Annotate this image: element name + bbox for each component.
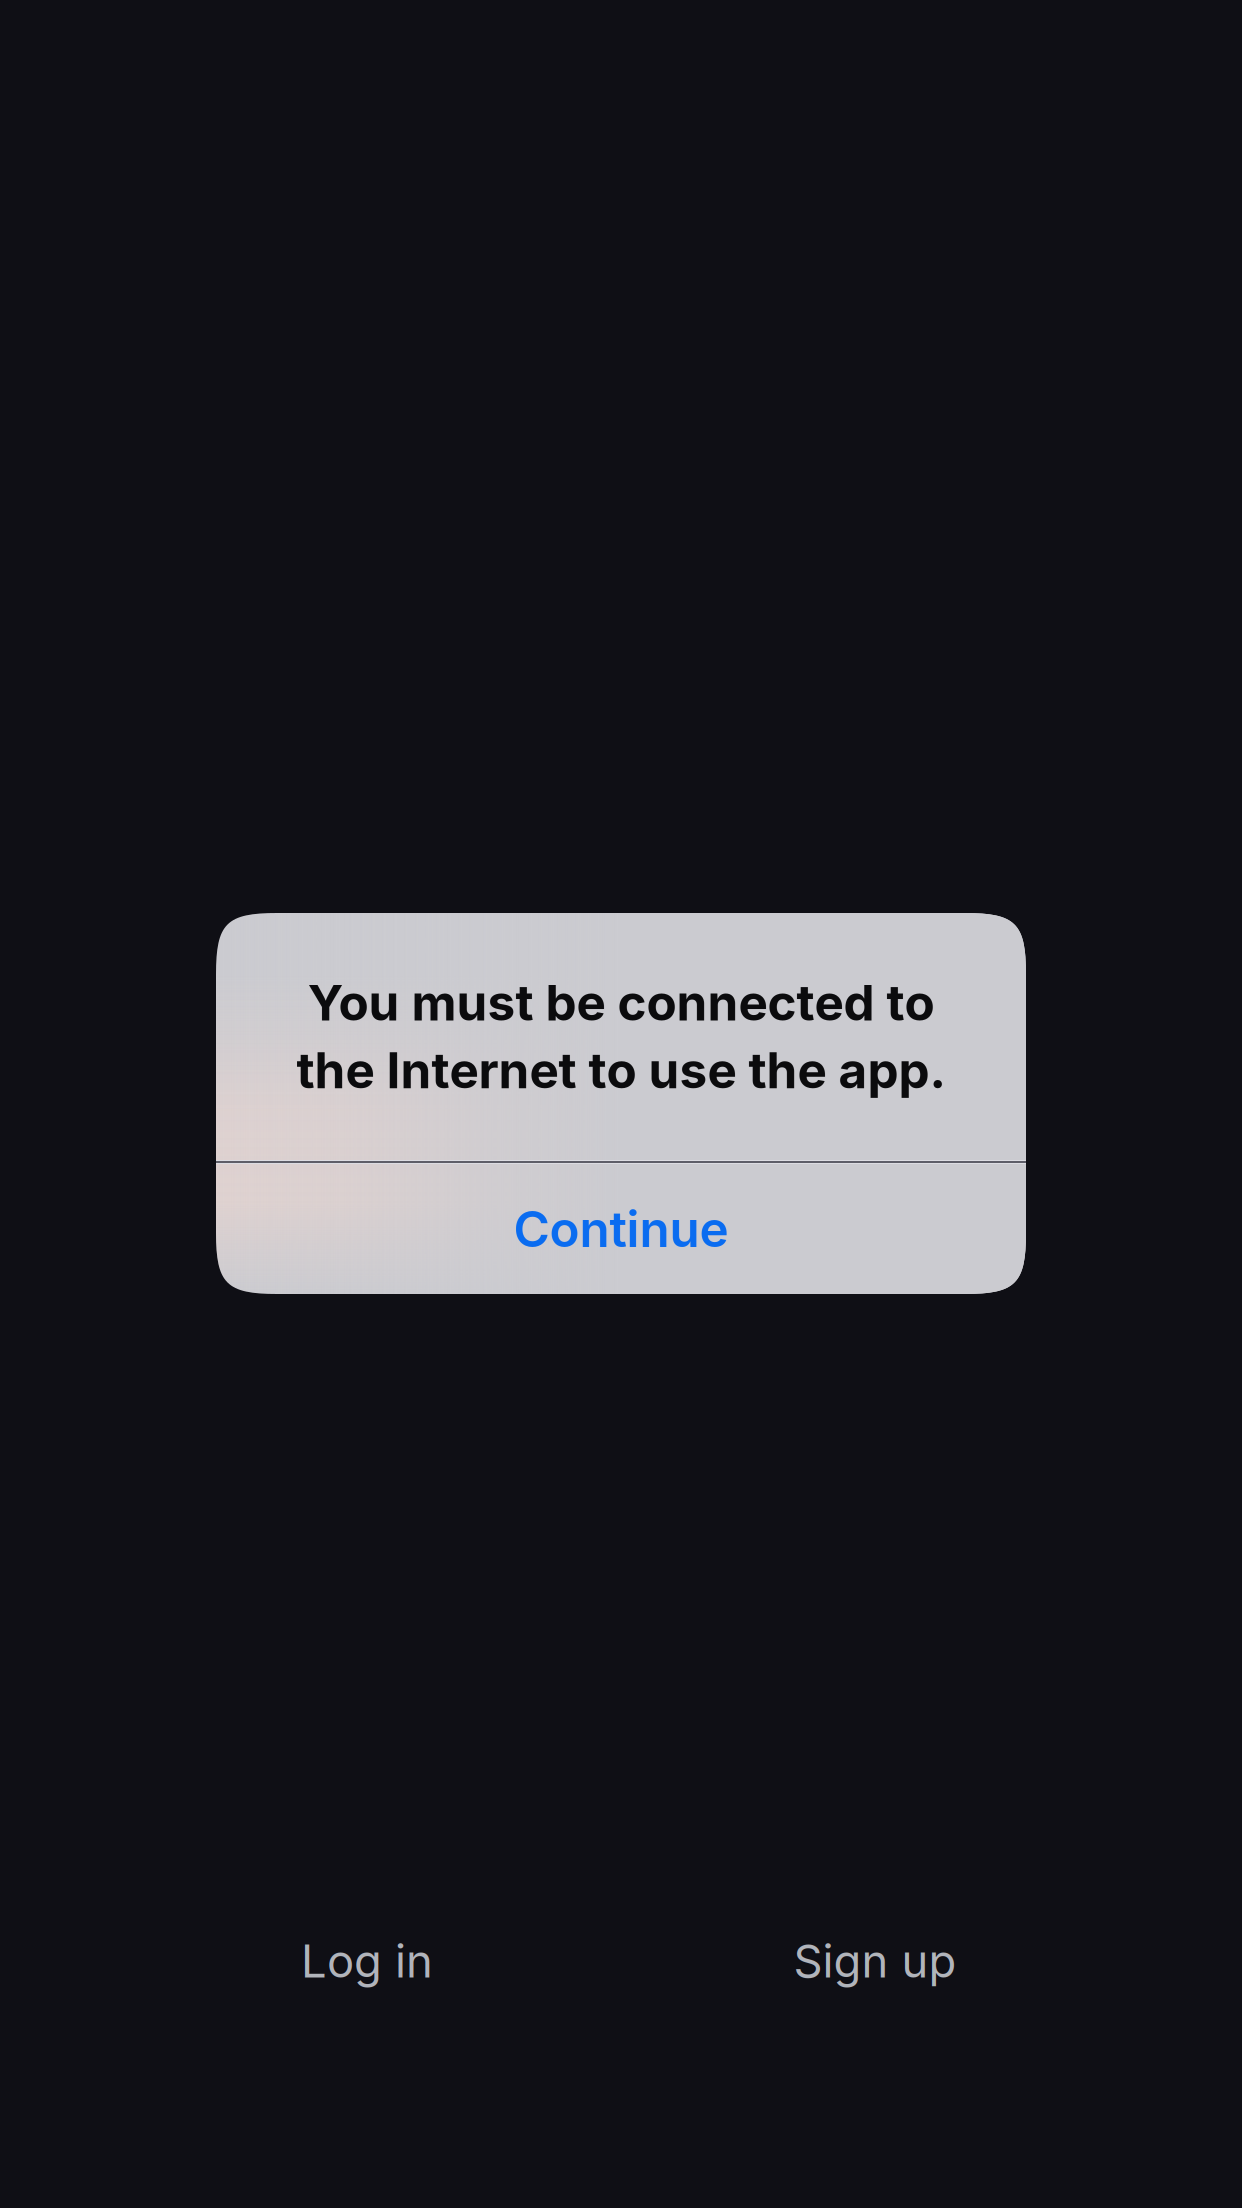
button[interactable]: Sign up [621,1894,1129,2028]
staticText: Sign up [793,1934,956,1988]
staticText: You must be connected to [307,973,934,1032]
button[interactable]: Continue [216,1164,1026,1294]
staticText: Continue [513,1199,728,1259]
staticText: Log in [301,1934,433,1988]
staticText: the Internet to use the app. [296,1040,945,1100]
button[interactable]: Log in [113,1894,621,2028]
